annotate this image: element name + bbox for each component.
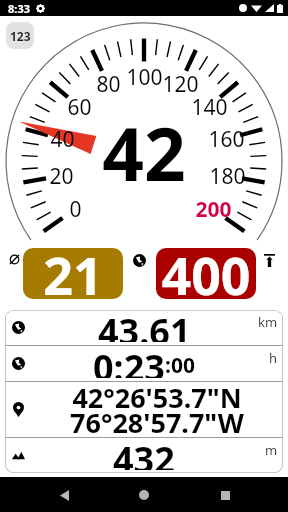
staticText: 180 (209, 162, 246, 184)
staticText: 120 (162, 70, 199, 92)
button[interactable]: 123 (6, 22, 34, 49)
staticText: 200 (195, 195, 232, 217)
staticText: 8:33 (8, 1, 30, 16)
button[interactable]: 432 (5, 438, 283, 473)
staticText: 0 (69, 195, 82, 217)
button[interactable]: Maximum (260, 250, 279, 270)
button[interactable]: Back (47, 478, 81, 512)
button[interactable]: Home (127, 478, 161, 512)
staticText: 0:23 (93, 343, 165, 378)
staticText: 80 (96, 70, 121, 92)
staticText: 43.61 (98, 310, 191, 342)
staticText: m (265, 441, 278, 459)
staticText: 20 (49, 162, 74, 184)
button[interactable] (23, 248, 123, 299)
staticText: 160 (208, 125, 245, 147)
staticText: 40 (50, 125, 75, 147)
button[interactable]: 0:23 (5, 346, 283, 381)
staticText: h (269, 349, 278, 367)
staticText: 400 (161, 239, 251, 310)
staticText: km (258, 313, 278, 331)
staticText: 123 (10, 28, 31, 44)
button[interactable]: 43.61 (5, 310, 283, 345)
button[interactable] (156, 248, 256, 299)
staticText: 21 (43, 239, 103, 310)
button[interactable]: 42°26'53.7"N 76°28'57.7"W (5, 382, 283, 437)
staticText: 100 (126, 63, 163, 85)
button[interactable]: Recent apps (208, 478, 242, 512)
staticText: 432 (113, 435, 175, 470)
staticText: 60 (67, 93, 92, 115)
staticText: 42 (102, 103, 186, 202)
staticText: :00 (165, 351, 195, 380)
staticText: 140 (191, 93, 228, 115)
staticText: 42°26'53.7"N 76°28'57.7"W (70, 379, 244, 434)
